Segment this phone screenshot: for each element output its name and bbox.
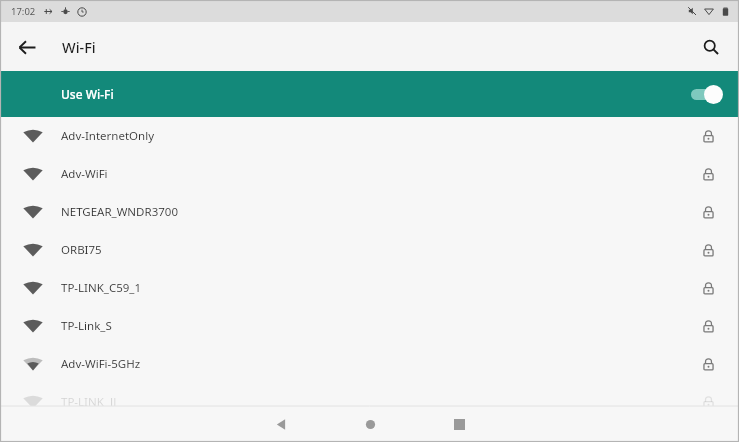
button[interactable]: Use Wi-Fi (0, 71, 739, 117)
staticText: 17:02 (11, 5, 36, 18)
button[interactable]: Search (691, 27, 731, 67)
staticText: Adv-WiFi (61, 166, 699, 182)
staticText: NETGEAR_WNDR3700 (61, 204, 699, 220)
button[interactable]: Home (353, 407, 387, 441)
button[interactable]: Back (7, 27, 47, 67)
button[interactable]: Adv-WiFi-5GHz (0, 345, 739, 383)
button[interactable]: TP-LINK_JJ (0, 383, 739, 421)
staticText: TP-Link_S (61, 318, 699, 334)
staticText: Adv-InternetOnly (61, 128, 699, 144)
staticText: ORBI75 (61, 242, 699, 258)
button[interactable]: Adv-InternetOnly (0, 117, 739, 155)
button[interactable]: TP-Link_S (0, 307, 739, 345)
button[interactable]: Back (264, 407, 298, 441)
button[interactable]: Recent apps (442, 407, 476, 441)
button[interactable]: ORBI75 (0, 231, 739, 269)
staticText: Use Wi-Fi (61, 86, 114, 102)
staticText: TP-LINK_JJ (61, 394, 699, 410)
staticText: Wi-Fi (62, 37, 96, 57)
staticText: Adv-WiFi-5GHz (61, 356, 699, 372)
button[interactable]: NETGEAR_WNDR3700 (0, 193, 739, 231)
button[interactable]: Adv-WiFi (0, 155, 739, 193)
staticText: TP-LINK_C59_1 (61, 280, 699, 296)
button[interactable]: TP-LINK_C59_1 (0, 269, 739, 307)
